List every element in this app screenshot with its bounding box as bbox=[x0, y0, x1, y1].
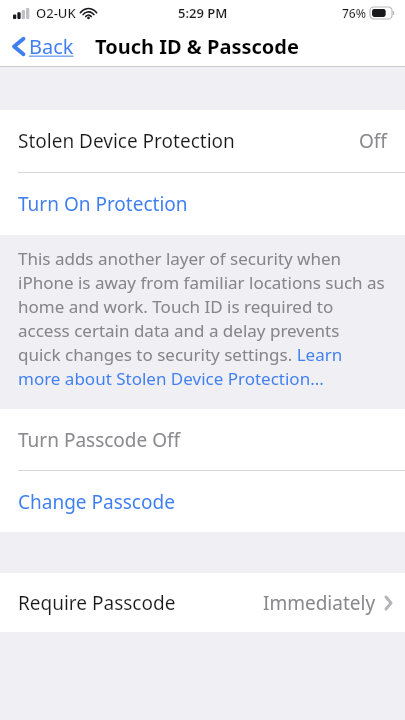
button[interactable]: Stolen Device Protection bbox=[0, 110, 405, 172]
button[interactable]: Change Passcode bbox=[0, 471, 405, 532]
staticText: 5:29 PM bbox=[178, 4, 228, 22]
staticText: Turn Passcode Off bbox=[18, 427, 181, 453]
staticText: Stolen Device Protection bbox=[18, 128, 235, 154]
staticText: Immediately bbox=[263, 590, 376, 616]
button[interactable]: This adds another layer of security when… bbox=[18, 247, 385, 390]
staticText: Back bbox=[29, 33, 74, 60]
staticText: Change Passcode bbox=[18, 489, 175, 515]
button[interactable]: Back bbox=[8, 29, 78, 64]
button[interactable]: Turn On Protection bbox=[0, 173, 405, 235]
button[interactable]: Turn Passcode Off bbox=[0, 409, 405, 470]
button[interactable]: Require Passcode bbox=[0, 573, 405, 632]
staticText: Turn On Protection bbox=[18, 191, 188, 217]
staticText: Off bbox=[359, 128, 387, 154]
staticText: 76% bbox=[342, 5, 366, 21]
staticText: O2-UK bbox=[36, 4, 76, 22]
staticText: Touch ID & Passcode bbox=[95, 33, 299, 60]
staticText: Require Passcode bbox=[18, 590, 176, 616]
staticText: This adds another layer of security when… bbox=[18, 247, 385, 390]
